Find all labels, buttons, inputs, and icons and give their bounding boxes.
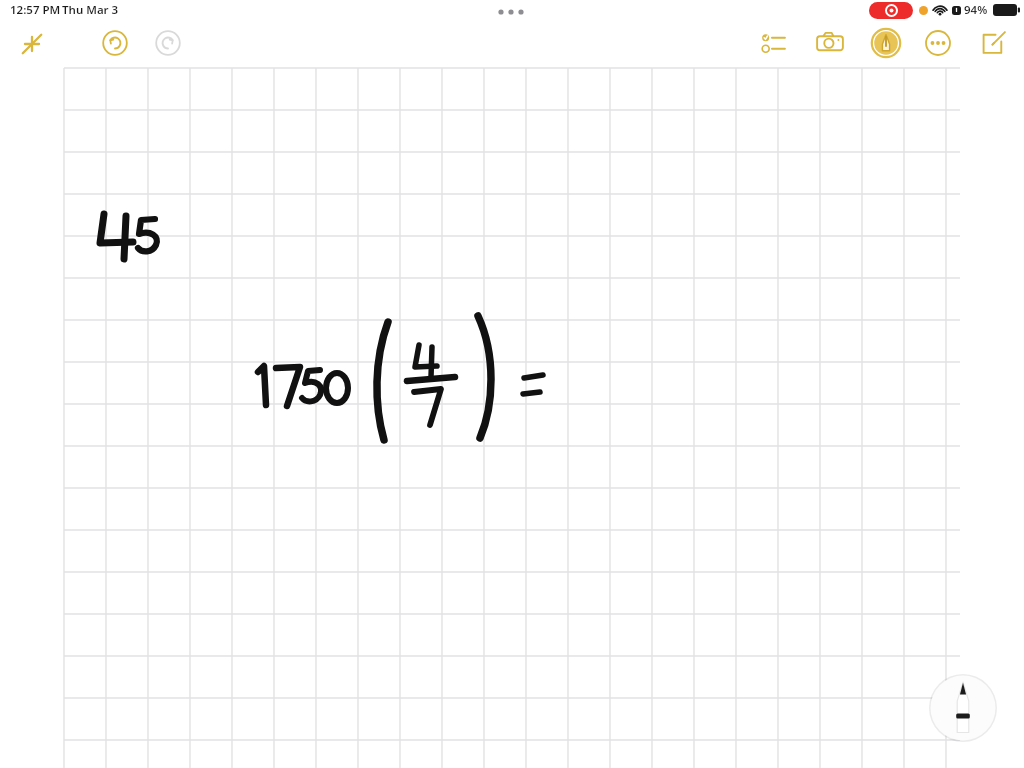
staticText: 12:57 PM [10,2,61,18]
button[interactable]: New note [977,26,1011,60]
staticText: 94% [964,2,988,18]
button[interactable]: Checklist [757,26,791,60]
button[interactable]: More options [921,26,955,60]
button[interactable]: Redo [151,26,185,60]
button[interactable]: Collapse [16,28,48,60]
button[interactable]: Highlighter [869,26,903,60]
button[interactable]: Recording [869,2,913,19]
button[interactable]: Undo [98,26,132,60]
button[interactable]: Pen tool [929,674,997,742]
button[interactable]: Camera [813,26,847,60]
staticText: Thu Mar 3 [62,2,119,18]
